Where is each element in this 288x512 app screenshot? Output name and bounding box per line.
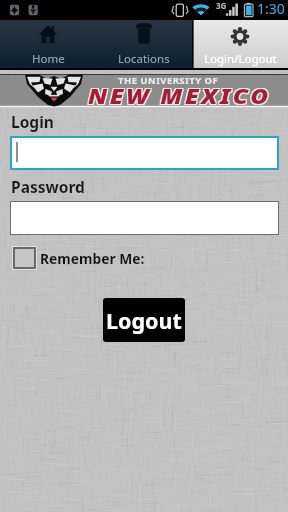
- button[interactable]: Logout: [103, 298, 185, 342]
- button[interactable]: Home: [0, 20, 96, 68]
- staticText: Login: [11, 111, 54, 132]
- staticText: NEW MEXICO: [89, 83, 272, 112]
- staticText: Password: [11, 176, 85, 197]
- button[interactable]: Locations: [96, 20, 192, 68]
- button[interactable]: [12, 138, 277, 168]
- staticText: Logout: [106, 306, 182, 335]
- staticText: Login/Logout: [204, 51, 277, 67]
- staticText: Remember Me:: [40, 249, 145, 268]
- staticText: NEW MEXICO: [87, 81, 270, 110]
- button[interactable]: Login/Logout: [192, 20, 288, 68]
- staticText: Home: [32, 51, 65, 67]
- staticText: NEW MEXICO: [89, 81, 272, 110]
- staticText: Locations: [118, 51, 170, 67]
- button[interactable]: Remember Me:: [12, 246, 145, 270]
- staticText: THE UNIVERSITY OF: [118, 74, 219, 87]
- staticText: NEW MEXICO: [87, 83, 270, 112]
- staticText: 3G: [216, 0, 227, 11]
- staticText: NEW MEXICO: [88, 82, 271, 111]
- staticText: 1:30: [257, 0, 285, 18]
